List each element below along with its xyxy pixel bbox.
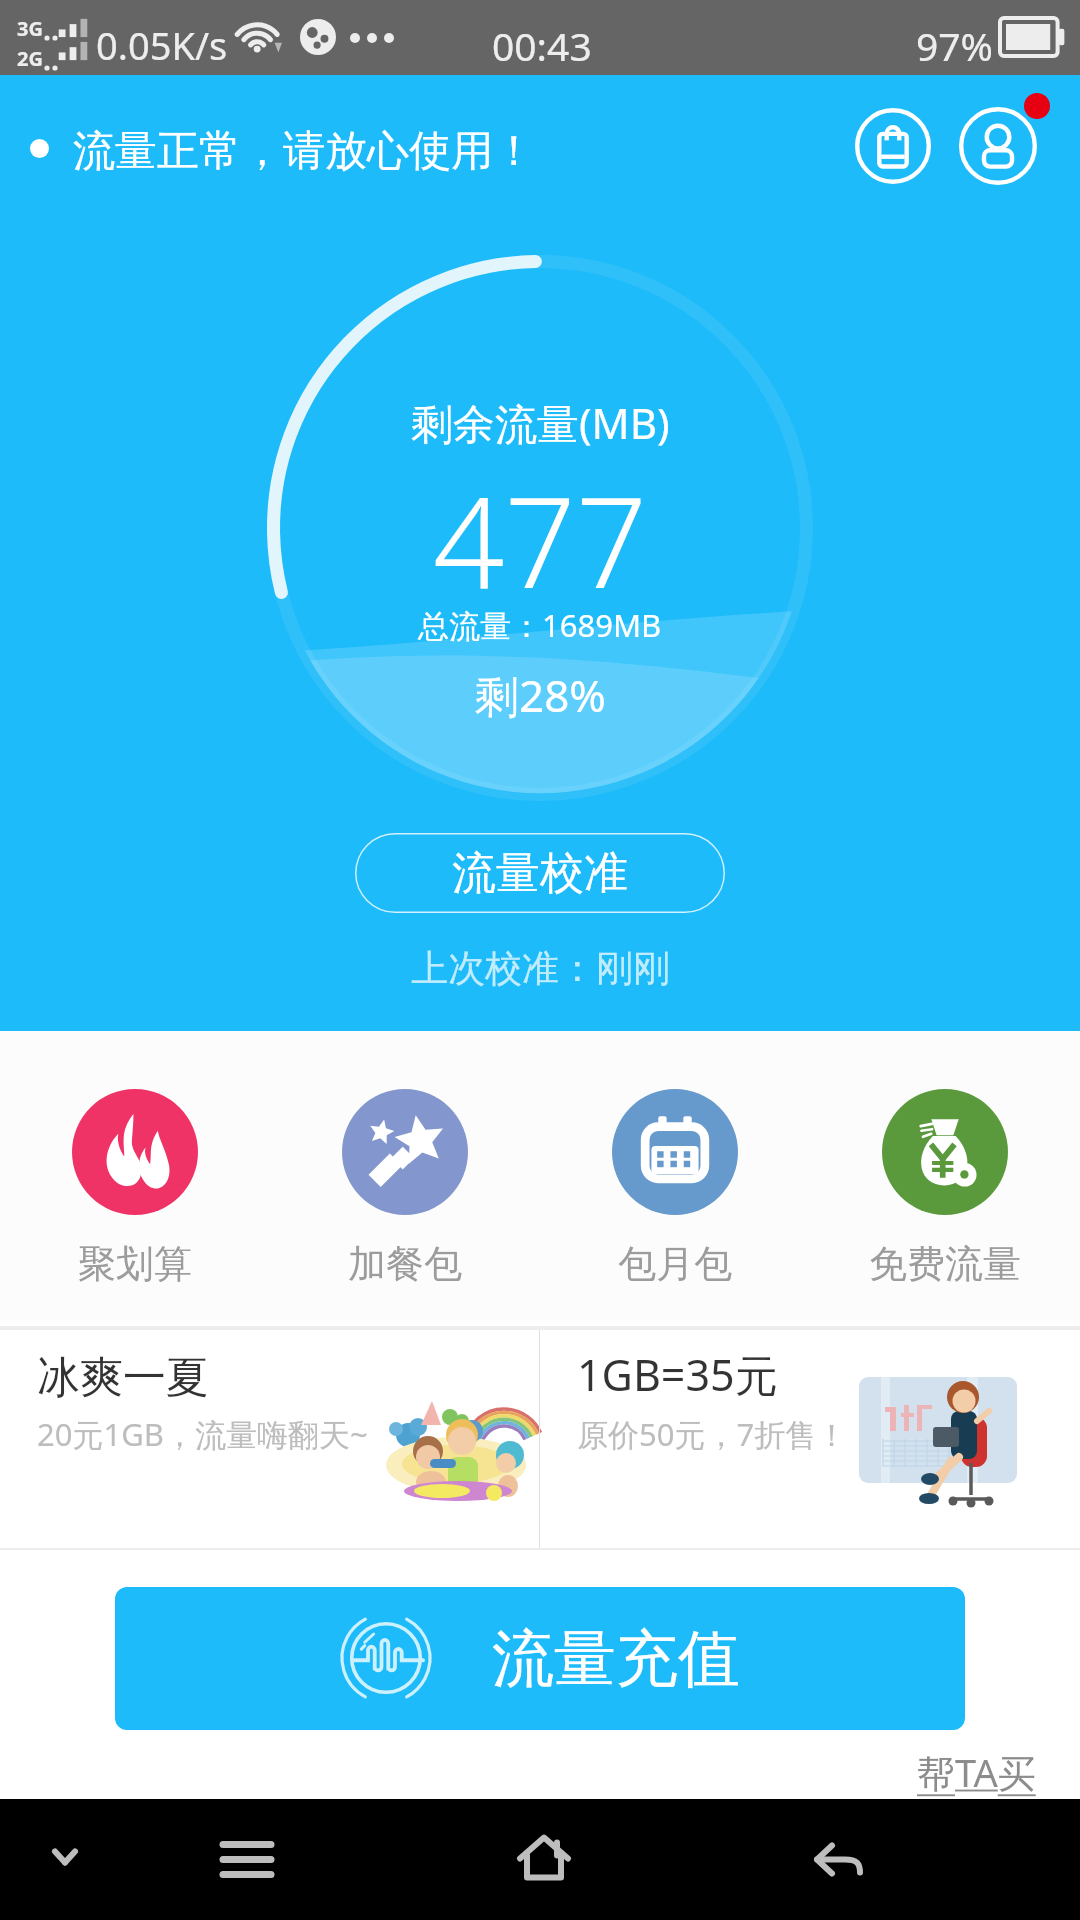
staticText: 00:43 <box>492 19 592 72</box>
button[interactable]: 1GB=35元 <box>540 1326 1080 1552</box>
button[interactable]: Collapse keyboard <box>10 1799 120 1920</box>
button[interactable]: 免费流量 <box>810 1031 1080 1321</box>
staticText: 加餐包 <box>348 1240 462 1288</box>
button[interactable]: Recent apps <box>182 1799 312 1920</box>
staticText: 1GB=35元 <box>577 1345 778 1404</box>
button[interactable]: Shop <box>851 104 935 188</box>
button[interactable]: Account <box>954 102 1042 190</box>
staticText: 总流量：1689MB <box>418 604 662 646</box>
staticText: 477 <box>433 454 648 624</box>
button[interactable]: 冰爽一夏 <box>0 1326 539 1552</box>
button[interactable]: 流量充值 <box>115 1587 965 1730</box>
staticText: 原价50元，7折售！ <box>577 1413 848 1455</box>
staticText: 流量充值 <box>492 1620 740 1698</box>
staticText: 0.05K/s <box>96 19 228 71</box>
staticText: 2G <box>17 45 43 72</box>
button[interactable]: 加餐包 <box>270 1031 540 1321</box>
staticText: 冰爽一夏 <box>37 1351 209 1405</box>
button[interactable]: Home <box>484 1799 604 1920</box>
staticText: 20元1GB，流量嗨翻天~ <box>37 1413 368 1455</box>
staticText: 97% <box>916 19 994 72</box>
button[interactable]: 帮TA买 <box>917 1746 1036 1798</box>
button[interactable]: 流量校准 <box>355 833 725 913</box>
staticText: 流量校准 <box>452 846 628 901</box>
button[interactable]: 包月包 <box>540 1031 810 1321</box>
staticText: 剩28% <box>475 665 606 725</box>
staticText: 聚划算 <box>78 1240 192 1288</box>
button[interactable]: Back <box>752 1799 882 1920</box>
staticText: 剩余流量(MB) <box>411 394 670 451</box>
staticText: 免费流量 <box>869 1240 1021 1288</box>
staticText: 上次校准：刚刚 <box>411 945 670 992</box>
staticText: 流量正常，请放心使用！ <box>73 125 535 178</box>
staticText: 包月包 <box>618 1240 732 1288</box>
staticText: 帮TA买 <box>917 1746 1036 1798</box>
button[interactable]: 聚划算 <box>0 1031 270 1321</box>
staticText: 3G <box>17 15 43 42</box>
